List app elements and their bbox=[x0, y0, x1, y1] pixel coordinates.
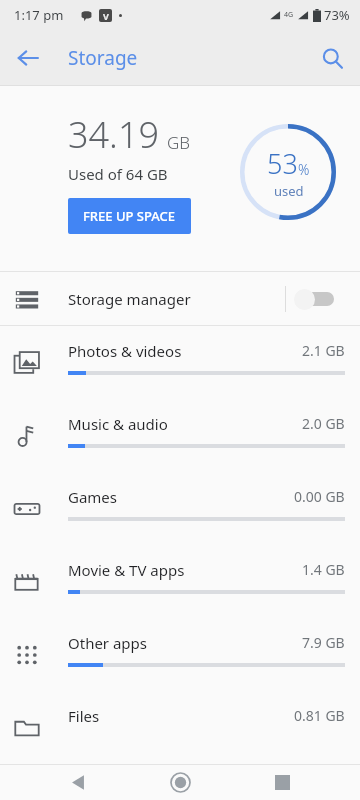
button[interactable]: Files bbox=[0, 691, 360, 764]
staticText: Other apps bbox=[68, 633, 148, 653]
staticText: Music & audio bbox=[68, 414, 168, 434]
staticText: FREE UP SPACE bbox=[83, 207, 176, 225]
staticText: 4G bbox=[284, 10, 294, 20]
staticText: Files bbox=[68, 706, 100, 726]
staticText: used bbox=[274, 182, 304, 200]
button[interactable]: Music & audio bbox=[0, 399, 360, 472]
button[interactable]: Back bbox=[6, 36, 50, 80]
button[interactable]: Back bbox=[54, 765, 102, 800]
staticText: 1.4 GB bbox=[302, 560, 345, 579]
button[interactable]: Games bbox=[0, 472, 360, 545]
button[interactable]: Storage manager toggle bbox=[292, 279, 346, 319]
staticText: Storage manager bbox=[68, 289, 191, 309]
staticText: 0.81 GB bbox=[294, 706, 345, 725]
staticText: Used of 64 GB bbox=[68, 164, 168, 184]
staticText: 2.1 GB bbox=[302, 341, 345, 360]
button[interactable]: Photos & videos bbox=[0, 326, 360, 399]
button[interactable]: Other apps bbox=[0, 618, 360, 691]
staticText: Storage bbox=[68, 45, 138, 71]
staticText: 2.0 GB bbox=[302, 414, 345, 433]
staticText: 0.00 GB bbox=[294, 487, 345, 506]
staticText: 53 bbox=[267, 145, 298, 182]
button[interactable]: Search bbox=[310, 36, 354, 80]
button[interactable]: Recents bbox=[258, 765, 306, 800]
staticText: % bbox=[298, 160, 310, 179]
button[interactable]: Storage manager bbox=[0, 272, 360, 325]
staticText: GB bbox=[167, 131, 191, 154]
staticText: 73% bbox=[324, 6, 350, 24]
button[interactable]: Movie & TV apps bbox=[0, 545, 360, 618]
button[interactable]: Home bbox=[156, 765, 204, 800]
staticText: 7.9 GB bbox=[302, 633, 345, 652]
button[interactable]: FREE UP SPACE bbox=[68, 198, 191, 234]
staticText: Movie & TV apps bbox=[68, 560, 185, 580]
staticText: Games bbox=[68, 487, 118, 507]
staticText: 1:17 pm bbox=[14, 6, 64, 24]
staticText: V bbox=[103, 10, 109, 22]
staticText: Photos & videos bbox=[68, 341, 182, 361]
staticText: 34.19 bbox=[68, 110, 160, 159]
